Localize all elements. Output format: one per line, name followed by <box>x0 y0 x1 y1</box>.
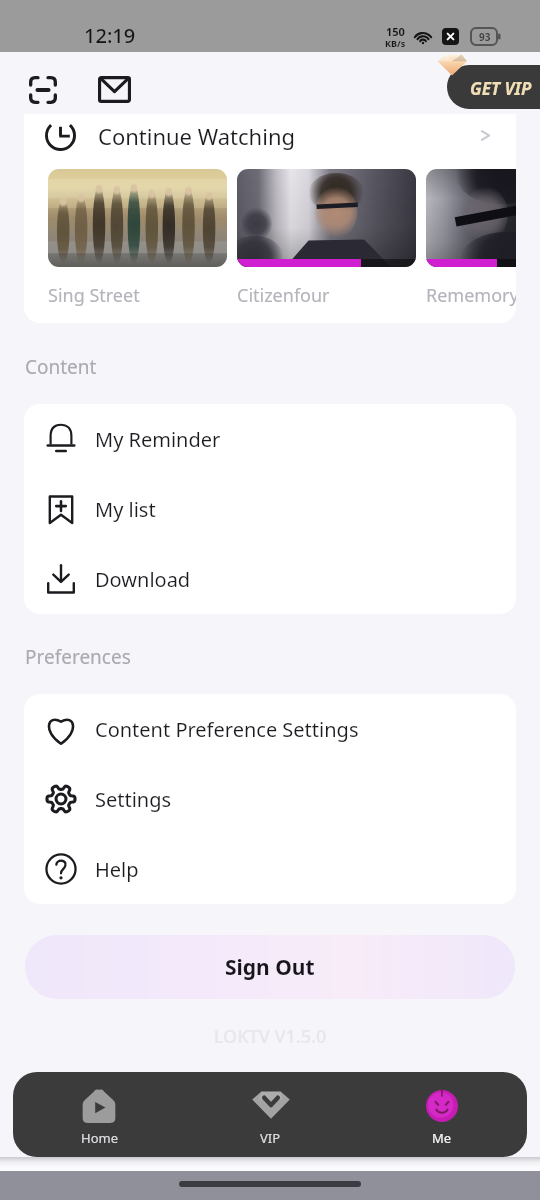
staticText: Download <box>95 566 191 593</box>
button[interactable]: My Reminder <box>24 404 516 474</box>
staticText: 12:19 <box>84 22 136 49</box>
button[interactable]: Sing Street <box>48 169 227 308</box>
button[interactable]: VIP <box>185 1072 356 1157</box>
staticText: GET VIP <box>470 77 532 100</box>
button[interactable]: My list <box>24 474 516 544</box>
button[interactable]: Download <box>24 544 516 614</box>
staticText: Preferences <box>25 644 131 670</box>
staticText: Me <box>432 1129 452 1147</box>
button[interactable]: Sign Out <box>25 935 515 999</box>
staticText: Citizenfour <box>237 283 330 308</box>
button[interactable]: Help <box>24 834 516 904</box>
button[interactable]: Content Preference Settings <box>24 694 516 764</box>
button[interactable]: Scan QR code <box>19 66 66 113</box>
staticText: My Reminder <box>95 426 221 453</box>
button[interactable]: Settings <box>24 764 516 834</box>
button[interactable]: Get VIP <box>447 65 540 109</box>
staticText: 93 <box>479 30 491 44</box>
button[interactable]: Me <box>356 1072 527 1157</box>
button[interactable]: Home <box>13 1072 185 1157</box>
staticText: Continue Watching <box>98 121 296 151</box>
staticText: Content Preference Settings <box>95 716 359 743</box>
staticText: My list <box>95 496 156 523</box>
staticText: Rememory <box>426 283 516 308</box>
button[interactable]: Rememory <box>426 169 516 308</box>
button[interactable]: Messages <box>91 66 138 113</box>
staticText: Help <box>95 856 139 883</box>
button[interactable]: Continue Watching <box>24 114 516 162</box>
staticText: 150 <box>386 24 405 39</box>
staticText: Sing Street <box>48 283 140 308</box>
staticText: Settings <box>95 786 172 813</box>
staticText: KB/s <box>385 37 406 49</box>
staticText: Home <box>81 1129 118 1147</box>
staticText: Sign Out <box>225 953 315 982</box>
staticText: VIP <box>260 1129 281 1147</box>
button[interactable]: Citizenfour <box>237 169 416 308</box>
staticText: Content <box>25 354 97 380</box>
